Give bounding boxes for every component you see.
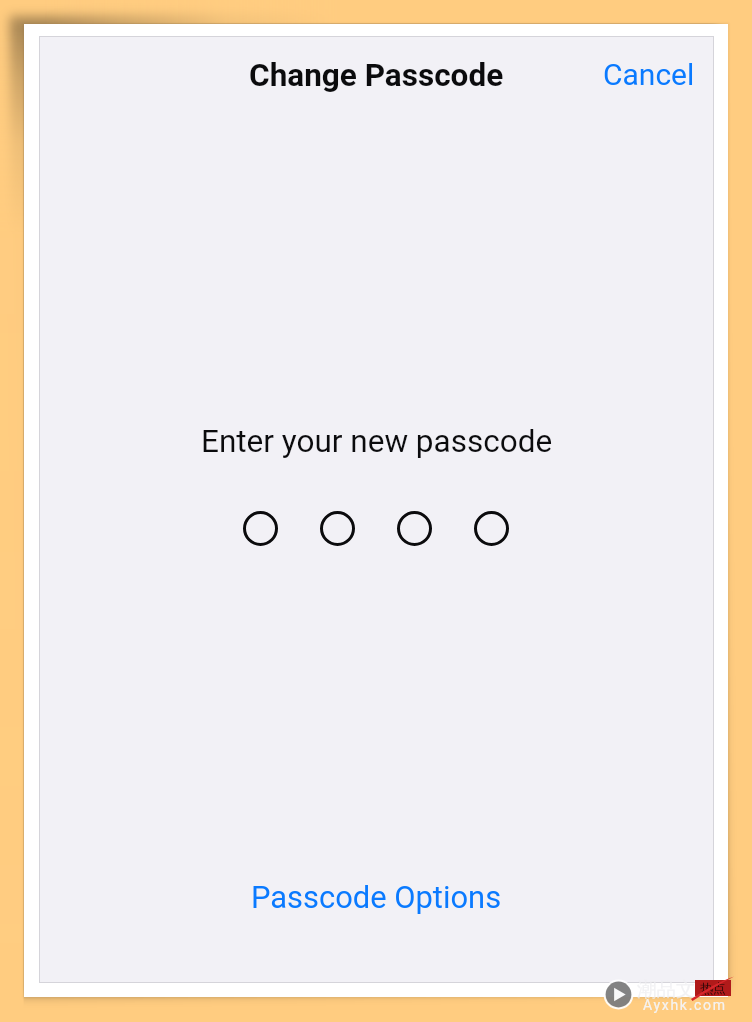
staticText: 热点 xyxy=(700,980,726,996)
button[interactable]: Cancel xyxy=(593,51,705,98)
staticText: Enter your new passcode xyxy=(201,423,553,460)
button[interactable]: Play xyxy=(603,979,634,1010)
staticText: 潮品文 xyxy=(637,977,696,1002)
staticText: Cancel xyxy=(603,57,695,92)
staticText: Passcode Options xyxy=(251,879,502,915)
button[interactable]: Passcode Options xyxy=(241,871,512,923)
staticText: Ayxhk.com xyxy=(643,997,727,1013)
button[interactable]: Change Passcode xyxy=(249,57,504,94)
staticText: Change Passcode xyxy=(249,57,504,94)
